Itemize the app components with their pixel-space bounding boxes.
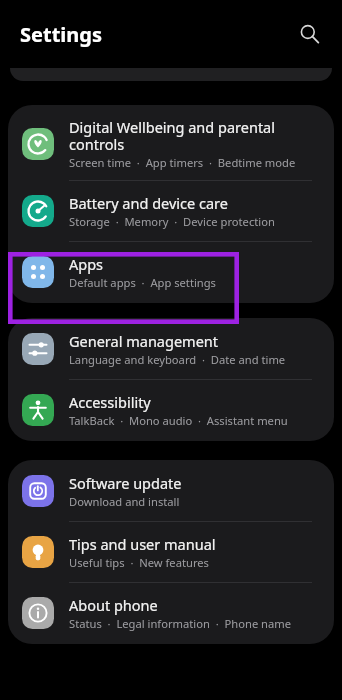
staticText: Accessibility <box>69 392 151 412</box>
button[interactable]: General management <box>8 318 334 379</box>
button[interactable]: Accessibility <box>8 380 334 441</box>
button[interactable]: Search settings <box>10 68 332 81</box>
other: Apps <box>22 256 54 288</box>
staticText: Download and install <box>69 494 180 509</box>
staticText: Software update <box>69 473 182 493</box>
other: Digital Wellbeing <box>22 128 54 160</box>
staticText: Language and keyboard · Date and time <box>69 352 286 367</box>
staticText: Digital Wellbeing and parental controls <box>69 117 275 154</box>
other: Software update <box>22 475 54 507</box>
staticText: Storage · Memory · Device protection <box>69 214 275 229</box>
button[interactable]: Apps <box>8 242 334 303</box>
other: Battery and device care <box>22 195 54 227</box>
button[interactable]: About phone <box>8 583 334 644</box>
button[interactable]: Digital Wellbeing <box>8 105 334 180</box>
staticText: Settings <box>20 21 102 48</box>
button[interactable]: Battery and device care <box>8 181 334 241</box>
staticText: Battery and device care <box>69 193 228 213</box>
staticText: Useful tips · New features <box>69 555 209 570</box>
staticText: General management <box>69 331 219 351</box>
staticText: Tips and user manual <box>69 534 216 554</box>
other: Accessibility <box>22 394 54 426</box>
staticText: Apps <box>69 254 104 274</box>
other: About phone <box>22 597 54 629</box>
other: General management <box>22 333 54 365</box>
staticText: About phone <box>69 595 158 615</box>
staticText: Screen time · App timers · Bedtime mode <box>69 155 296 170</box>
button[interactable]: Tips and user manual <box>8 522 334 582</box>
staticText: TalkBack · Mono audio · Assistant menu <box>69 413 288 428</box>
other: Tips and user manual <box>22 536 54 568</box>
staticText: Status · Legal information · Phone name <box>69 616 292 631</box>
button[interactable]: Software update <box>8 460 334 521</box>
staticText: Default apps · App settings <box>69 275 216 290</box>
button[interactable]: Search <box>294 19 324 49</box>
